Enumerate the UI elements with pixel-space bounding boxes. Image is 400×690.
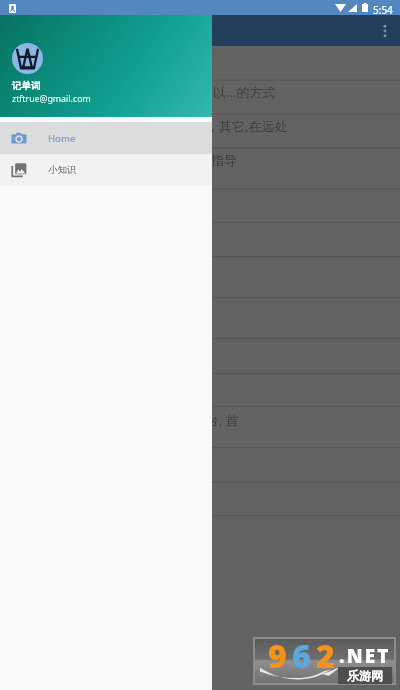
- staticText: 指导: [211, 152, 237, 168]
- staticText: 5:54: [373, 3, 393, 17]
- staticText: ，其它,在远处: [206, 117, 288, 135]
- button[interactable]: 以...的方式: [0, 75, 400, 109]
- button[interactable]: More options: [369, 15, 400, 46]
- button[interactable]: 小知识: [0, 154, 212, 186]
- button[interactable]: 指导: [0, 143, 400, 177]
- button[interactable]: Home: [0, 122, 212, 154]
- staticText: 9: [268, 634, 287, 678]
- staticText: 记单词: [12, 80, 41, 92]
- staticText: 小知识: [48, 164, 77, 176]
- button[interactable]: 台, 首: [0, 403, 400, 437]
- staticText: .NET: [339, 643, 391, 669]
- staticText: 2: [316, 634, 335, 678]
- staticText: 乐游网: [347, 668, 383, 683]
- staticText: ztftrue@gmail.com: [12, 93, 91, 105]
- staticText: 6: [292, 634, 311, 678]
- staticText: Home: [48, 132, 76, 145]
- button[interactable]: ，其它,在远处: [0, 109, 400, 143]
- staticText: 以...的方式: [213, 83, 276, 101]
- staticText: 台, 首: [206, 411, 239, 429]
